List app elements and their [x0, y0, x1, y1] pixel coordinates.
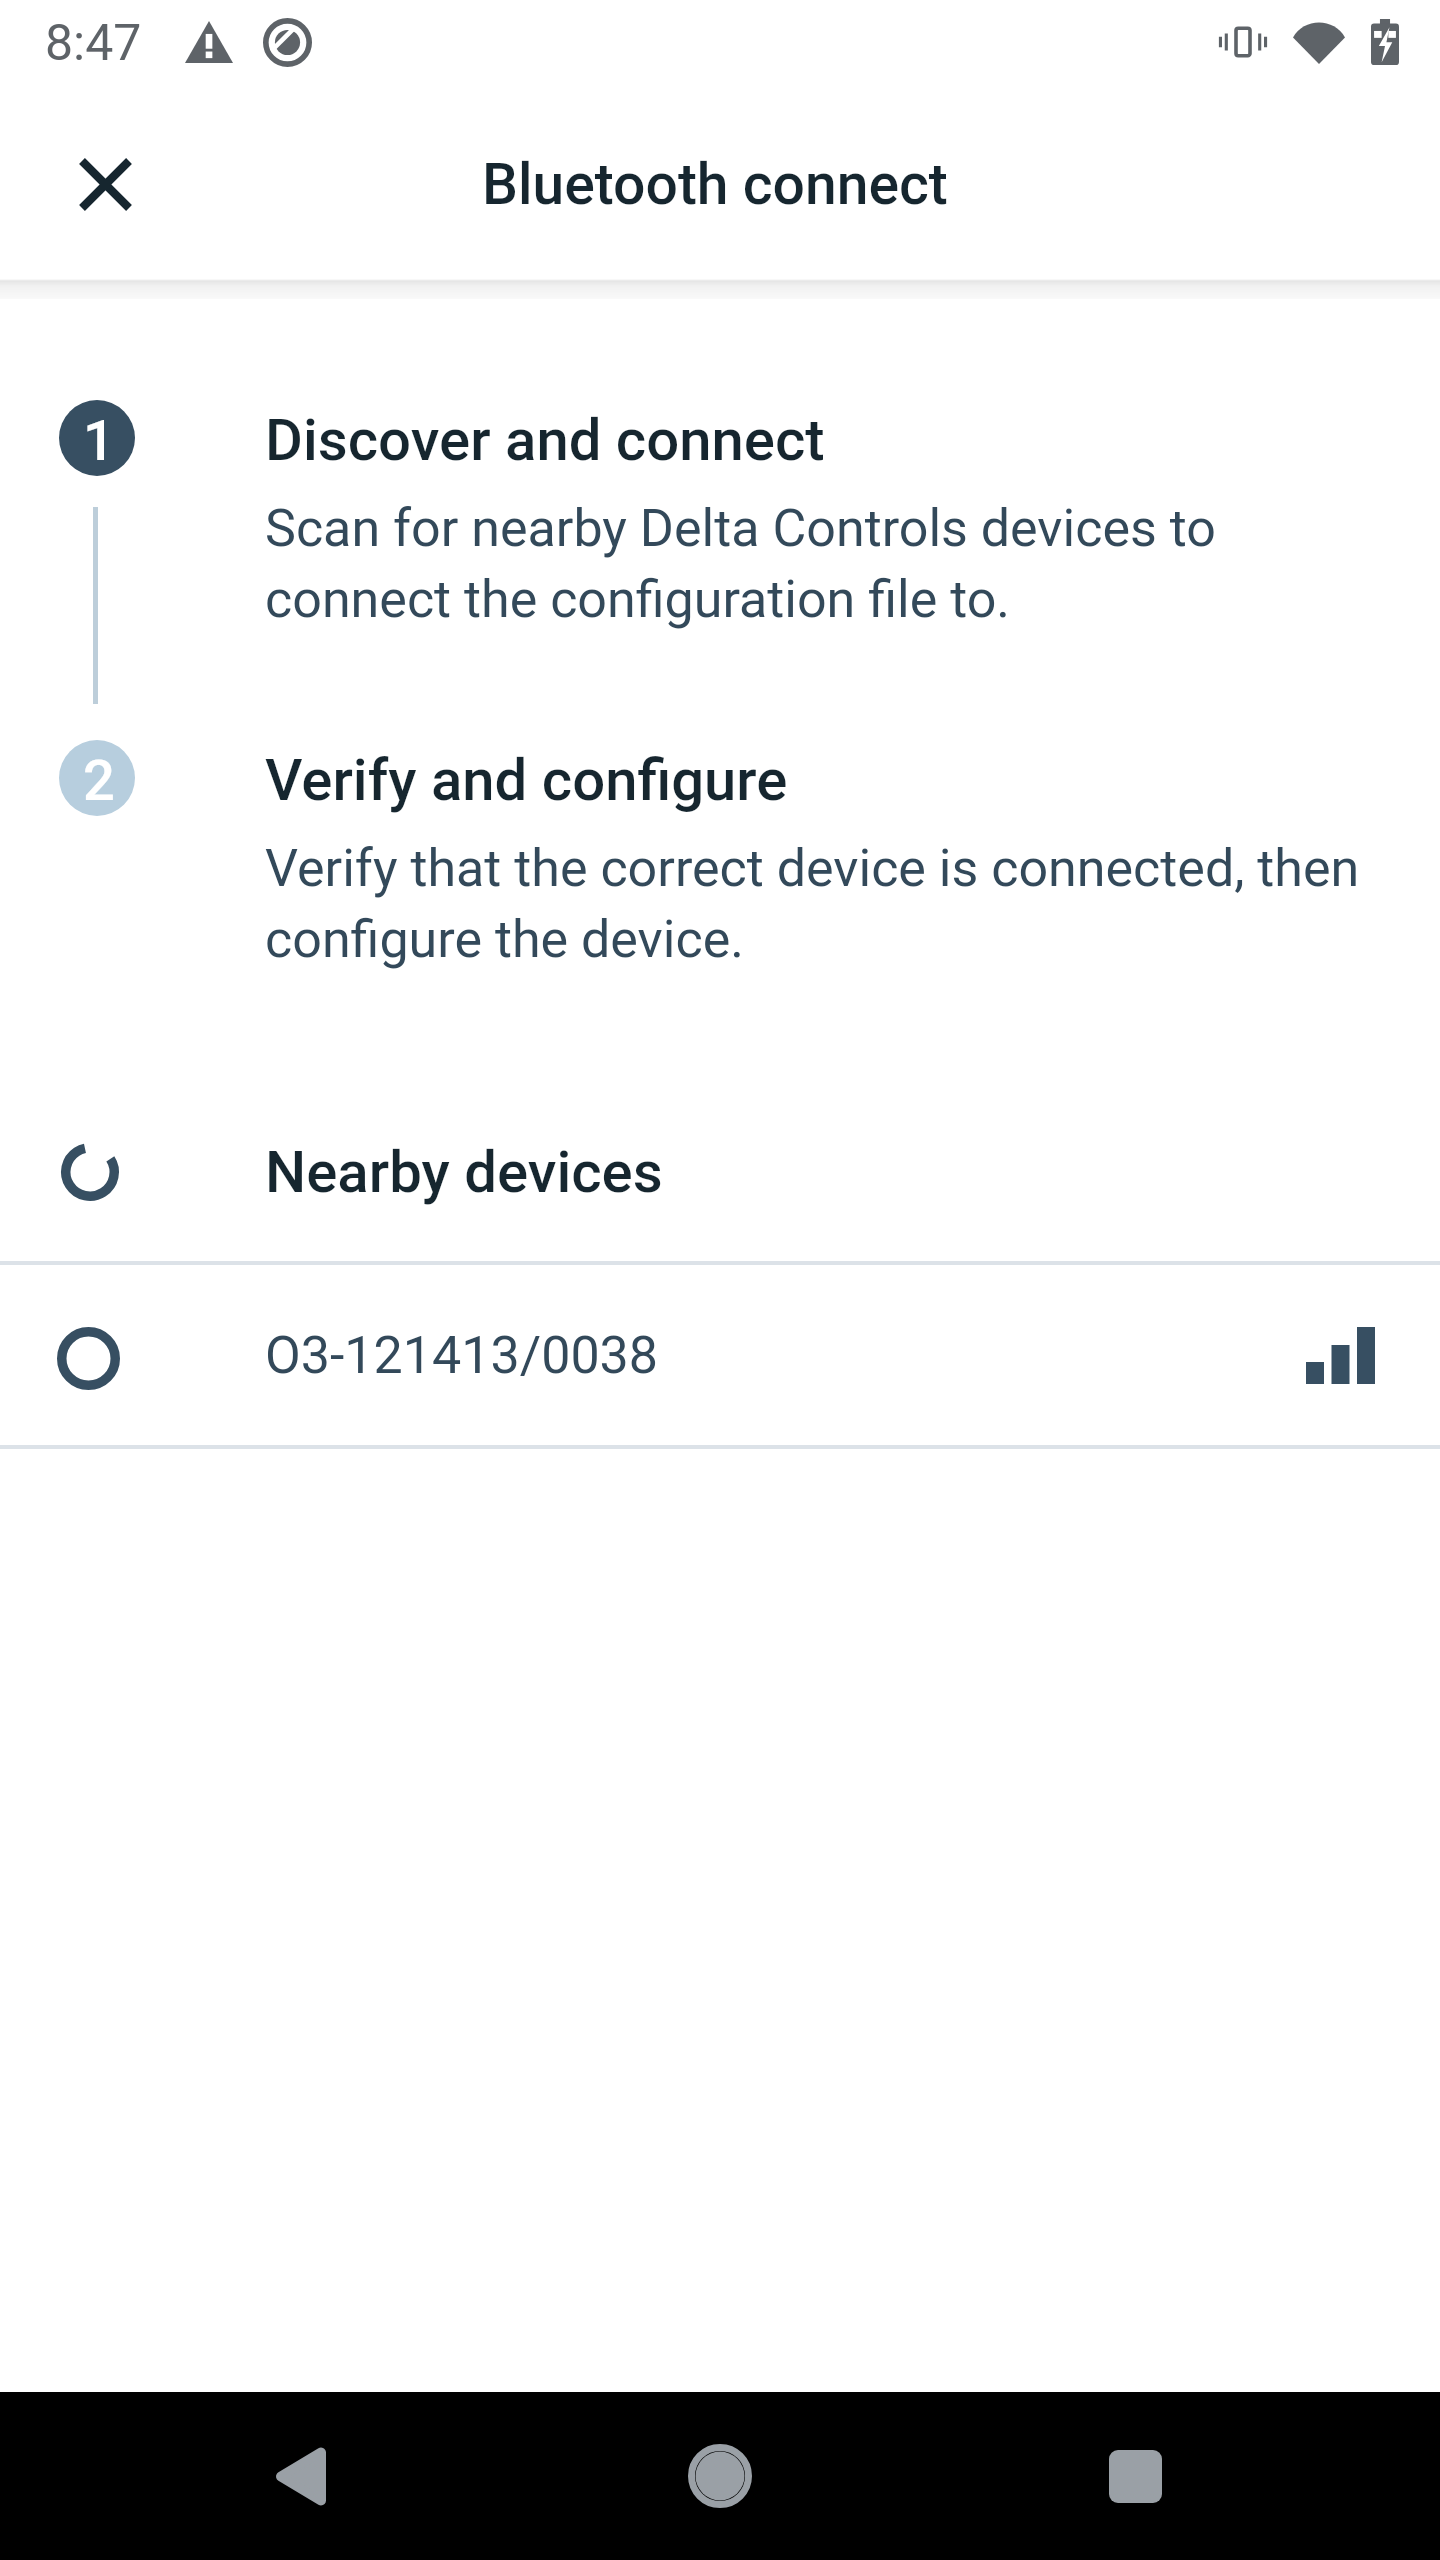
- staticText: Nearby devices: [265, 1138, 663, 1206]
- staticText: 1: [83, 408, 115, 474]
- staticText: 8:47: [45, 14, 142, 73]
- button[interactable]: O3-121413/0038: [0, 1265, 1440, 1445]
- staticText: Verify and configure: [265, 746, 788, 814]
- staticText: Discover and connect: [265, 406, 825, 474]
- staticText: 2: [83, 748, 115, 814]
- staticText: Scan for nearby Delta Controls devices t…: [265, 498, 1385, 630]
- button[interactable]: Home: [648, 2392, 792, 2560]
- button[interactable]: Recent apps: [1063, 2392, 1207, 2560]
- staticText: Verify that the correct device is connec…: [265, 838, 1385, 970]
- button[interactable]: Back: [225, 2392, 369, 2560]
- button[interactable]: Close: [57, 136, 153, 232]
- staticText: Bluetooth connect: [482, 151, 948, 218]
- staticText: O3-121413/0038: [265, 1325, 659, 1386]
